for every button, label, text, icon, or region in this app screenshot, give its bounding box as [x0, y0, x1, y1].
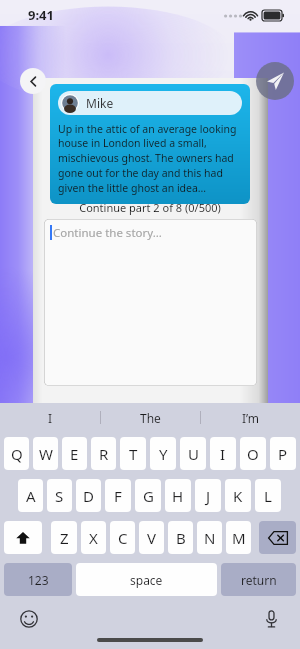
button[interactable]: P	[270, 437, 296, 470]
staticText: Q	[11, 444, 23, 464]
staticText: B	[176, 528, 186, 548]
staticText: N	[204, 528, 216, 548]
button[interactable]: H	[165, 479, 191, 512]
button[interactable]: I	[0, 403, 100, 432]
button[interactable]: Send	[256, 62, 294, 100]
button[interactable]: I	[210, 437, 236, 470]
staticText: O	[247, 444, 259, 464]
button[interactable]: I’m	[201, 403, 300, 432]
button[interactable]: S	[47, 479, 72, 512]
button[interactable]: N	[197, 521, 222, 554]
staticText: D	[83, 486, 94, 506]
button[interactable]: X	[81, 521, 106, 554]
button[interactable]: U	[180, 437, 206, 470]
staticText: A	[26, 486, 36, 506]
button[interactable]: C	[110, 521, 135, 554]
staticText: H	[172, 486, 184, 506]
button[interactable]: V	[139, 521, 164, 554]
staticText: W	[39, 444, 53, 464]
button[interactable]: E	[62, 437, 87, 470]
button[interactable]: M	[226, 521, 251, 554]
button[interactable]: Emoji	[18, 608, 40, 630]
button[interactable]: Y	[150, 437, 176, 470]
staticText: Up in the attic of an average looking ho…	[58, 122, 242, 195]
button[interactable]: W	[33, 437, 58, 470]
staticText: M	[232, 528, 246, 548]
staticText: C	[118, 528, 128, 548]
staticText: 9:41	[28, 6, 54, 24]
button[interactable]: J	[195, 479, 221, 512]
button[interactable]: O	[240, 437, 266, 470]
button[interactable]: Backspace	[259, 521, 296, 554]
button[interactable]: Shift	[4, 521, 42, 554]
staticText: Y	[159, 444, 168, 464]
staticText: X	[89, 528, 98, 548]
button[interactable]: 123	[4, 563, 72, 596]
staticText: U	[188, 444, 199, 464]
staticText: K	[233, 486, 243, 506]
staticText: The	[140, 410, 161, 426]
button[interactable]: Back	[20, 68, 46, 94]
button[interactable]: Q	[4, 437, 29, 470]
staticText: Z	[60, 528, 69, 548]
staticText: return	[241, 572, 277, 588]
staticText: V	[147, 528, 157, 548]
staticText: I	[220, 444, 226, 464]
button[interactable]: F	[105, 479, 131, 512]
staticText: G	[143, 486, 154, 506]
button[interactable]: Continue the story...	[44, 219, 257, 386]
staticText: E	[70, 444, 79, 464]
button[interactable]: A	[18, 479, 43, 512]
button[interactable]: space	[76, 563, 217, 596]
staticText: space	[130, 572, 163, 588]
staticText: I	[48, 410, 53, 426]
staticText: I’m	[242, 410, 260, 426]
staticText: S	[55, 486, 64, 506]
button[interactable]: Z	[51, 521, 77, 554]
button[interactable]: Dictation	[260, 608, 282, 630]
button[interactable]: K	[225, 479, 251, 512]
button[interactable]: R	[91, 437, 116, 470]
button[interactable]: G	[135, 479, 161, 512]
button[interactable]: D	[76, 479, 101, 512]
staticText: J	[206, 486, 211, 506]
staticText: Continue the story...	[53, 225, 162, 241]
button[interactable]: T	[120, 437, 146, 470]
staticText: Mike	[86, 95, 114, 111]
staticText: 123	[28, 572, 49, 588]
staticText: T	[129, 444, 138, 464]
button[interactable]: B	[168, 521, 193, 554]
button[interactable]: The	[101, 403, 200, 432]
staticText: L	[264, 486, 272, 506]
staticText: Continue part 2 of 8 (0/500)	[79, 200, 221, 215]
button[interactable]: L	[255, 479, 281, 512]
staticText: P	[278, 444, 288, 464]
staticText: F	[114, 486, 122, 506]
staticText: R	[99, 444, 109, 464]
button[interactable]: return	[221, 563, 296, 596]
